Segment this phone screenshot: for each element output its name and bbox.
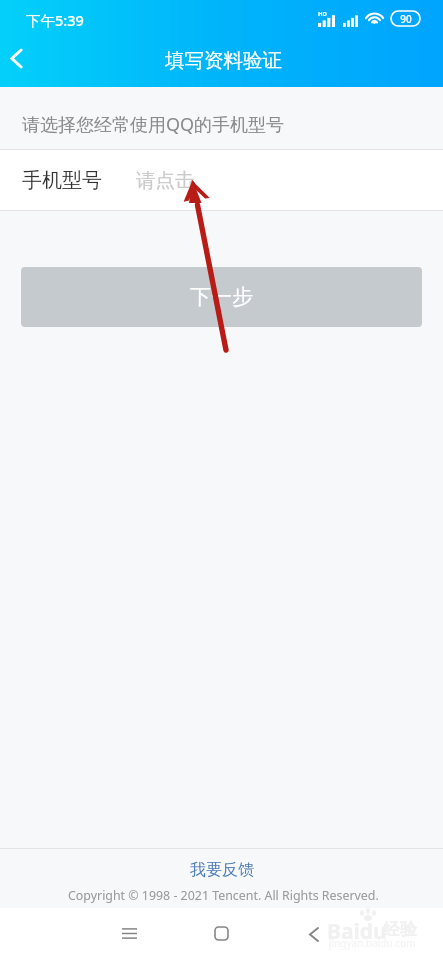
button[interactable]: Home: [192, 908, 248, 960]
staticText: 填写资料验证: [165, 48, 282, 73]
button[interactable]: Back: [286, 908, 342, 960]
staticText: 请选择您经常使用QQ的手机型号: [22, 112, 285, 137]
button[interactable]: Back: [0, 36, 44, 87]
staticText: HD: [318, 10, 327, 18]
button[interactable]: 手机型号: [0, 150, 443, 210]
staticText: 下一步: [190, 284, 253, 310]
staticText: jingyan.baidu.com: [329, 936, 416, 950]
button[interactable]: Menu: [100, 908, 156, 960]
staticText: 请点击: [136, 168, 195, 193]
staticText: 手机型号: [22, 168, 102, 193]
button[interactable]: 我要反馈: [190, 860, 254, 880]
staticText: 90: [400, 12, 412, 26]
staticText: 经验: [383, 919, 417, 940]
staticText: Baidu: [327, 917, 387, 946]
staticText: 下午5:39: [26, 10, 84, 30]
button[interactable]: 下一步: [21, 267, 422, 327]
staticText: Copyright © 1998 - 2021 Tencent. All Rig…: [68, 887, 379, 904]
